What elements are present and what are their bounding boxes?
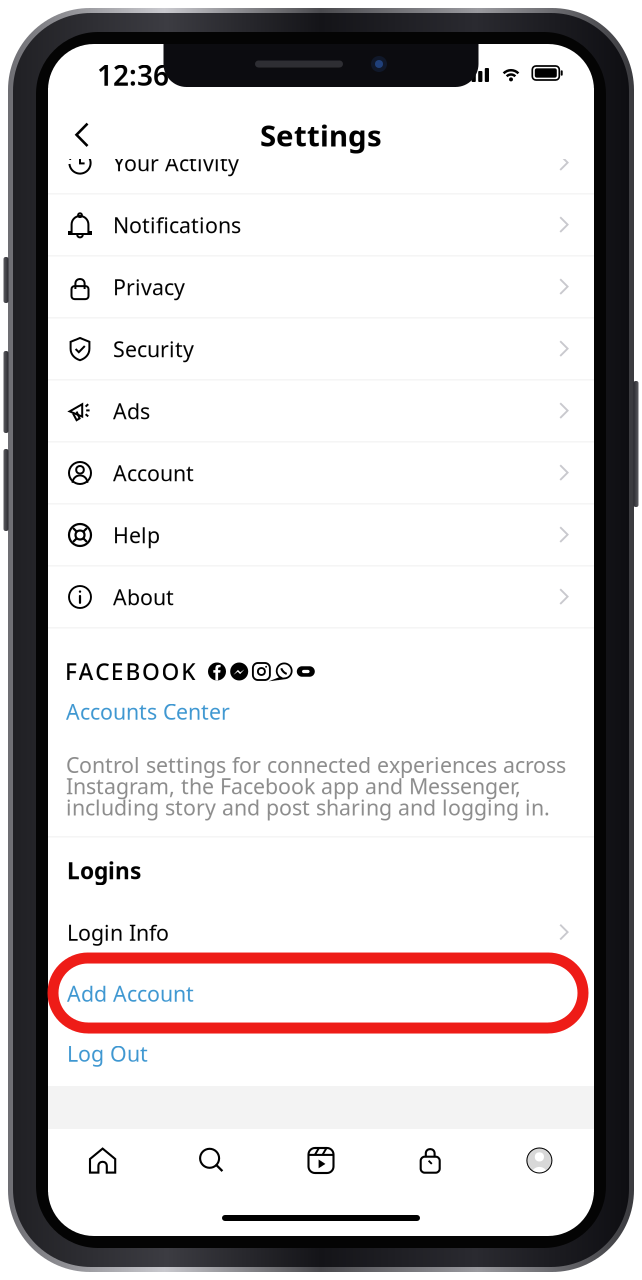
button[interactable]: Home — [48, 1129, 157, 1192]
staticText: O — [162, 656, 180, 686]
staticText: K — [181, 656, 195, 686]
button[interactable]: Reels — [266, 1129, 376, 1192]
button[interactable]: Profile — [485, 1129, 594, 1192]
button[interactable]: About — [48, 566, 594, 627]
staticText: Help — [113, 521, 160, 549]
button[interactable]: Help — [48, 504, 594, 565]
staticText: C — [95, 656, 109, 686]
staticText: Logins — [67, 855, 141, 885]
staticText: Add Account — [67, 979, 194, 1008]
staticText: E — [111, 656, 124, 686]
button[interactable]: Search — [157, 1129, 266, 1192]
button[interactable]: Log Out — [48, 1023, 594, 1084]
button[interactable]: Shop — [376, 1129, 485, 1192]
staticText: About — [113, 583, 174, 611]
staticText: Privacy — [113, 273, 185, 301]
staticText: Notifications — [113, 211, 241, 239]
staticText: F — [65, 656, 77, 686]
staticText: A — [79, 656, 94, 686]
staticText: Control settings for connected experienc… — [66, 750, 566, 821]
staticText: Login Info — [67, 918, 169, 947]
staticText: Security — [113, 335, 194, 363]
staticText: Your Activity — [113, 149, 239, 177]
button[interactable]: Login Info — [48, 904, 594, 960]
button[interactable]: Ads — [48, 380, 594, 441]
staticText: Log Out — [67, 1039, 148, 1068]
staticText: 12:36 — [97, 56, 169, 94]
button[interactable]: Your Activity — [48, 132, 594, 193]
button[interactable]: Accounts Center — [66, 696, 386, 726]
button[interactable]: Privacy — [48, 256, 594, 317]
button[interactable]: Security — [48, 318, 594, 379]
staticText: Settings — [260, 115, 382, 154]
staticText: Account — [113, 459, 194, 487]
button[interactable]: Back — [56, 113, 108, 157]
staticText: O — [142, 656, 160, 686]
staticText: Accounts Center — [66, 697, 230, 726]
staticText: Ads — [113, 397, 150, 425]
staticText: B — [125, 656, 140, 686]
button[interactable]: Account — [48, 442, 594, 503]
button[interactable]: Add Account — [48, 963, 594, 1024]
button[interactable]: Notifications — [48, 194, 594, 255]
